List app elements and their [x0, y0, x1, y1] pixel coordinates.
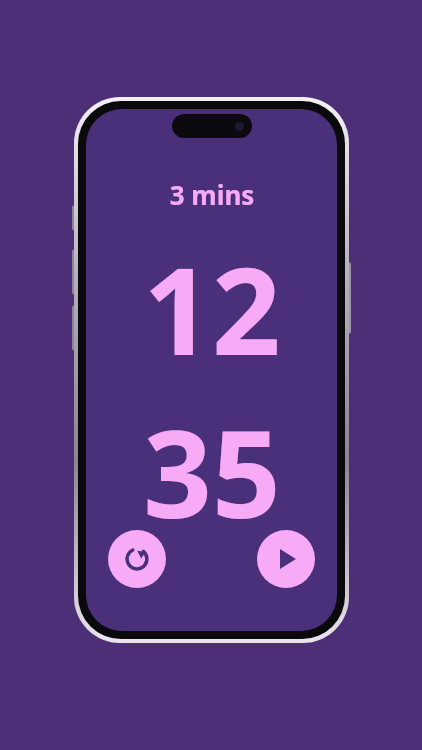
staticText: 12	[143, 227, 281, 390]
staticText: 35	[143, 390, 281, 553]
button[interactable]: Play	[257, 530, 315, 588]
button[interactable]: Restart timer	[108, 530, 166, 588]
staticText: 3 mins	[102, 177, 322, 212]
